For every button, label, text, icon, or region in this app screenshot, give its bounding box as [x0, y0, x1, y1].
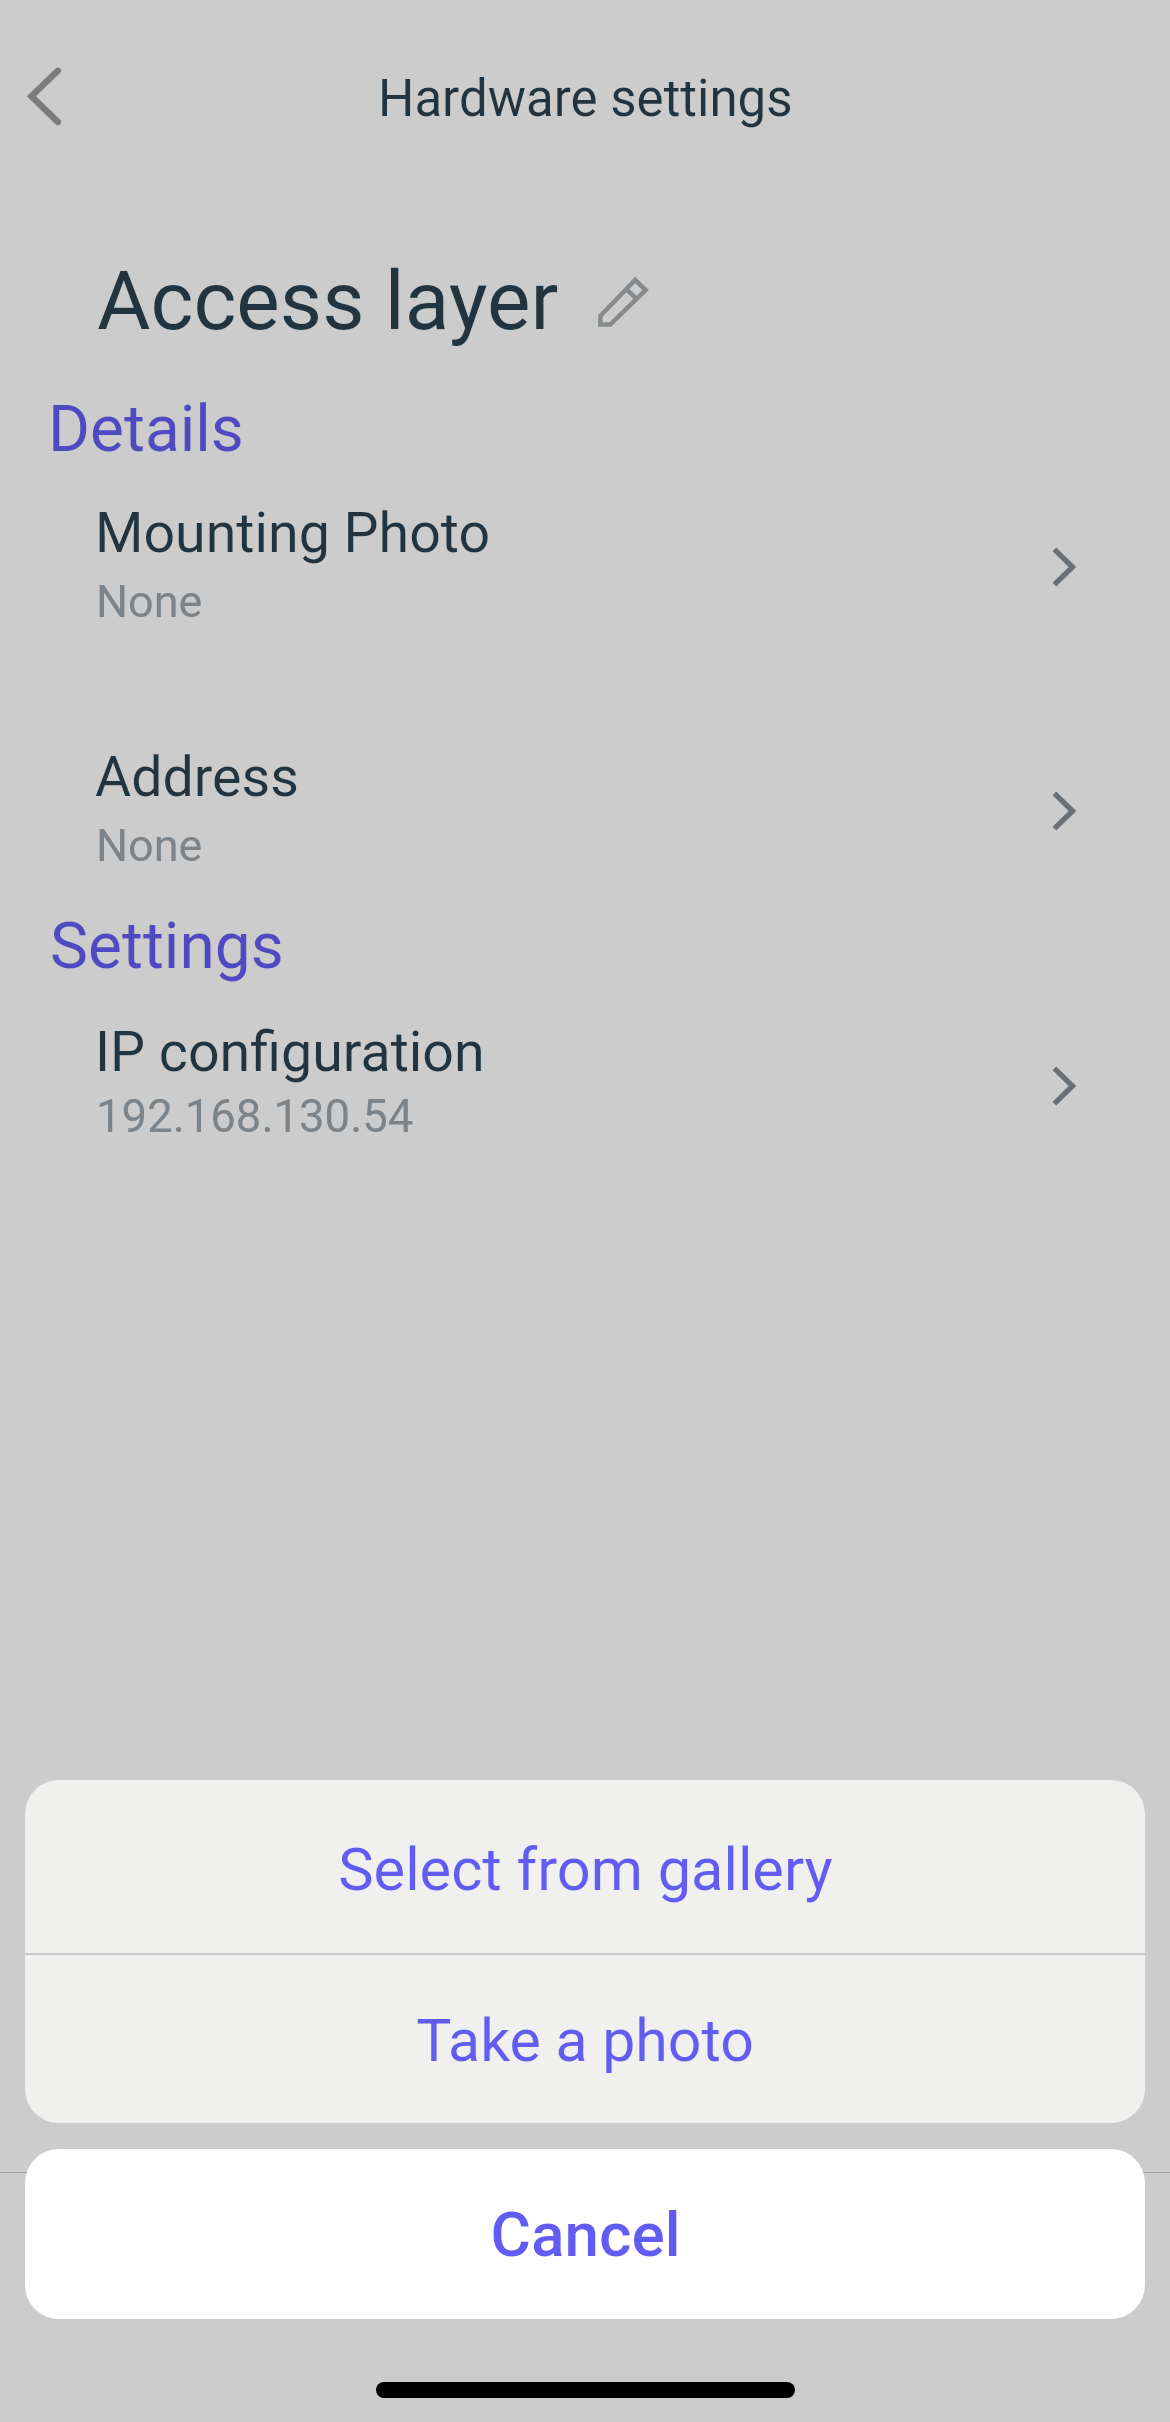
button[interactable]: Take a photo: [25, 1952, 1145, 2123]
staticText: None: [96, 575, 203, 628]
staticText: Details: [48, 392, 244, 467]
staticText: Mounting Photo: [95, 501, 491, 566]
button[interactable]: Cancel: [25, 2149, 1145, 2319]
button[interactable]: IP configuration: [0, 1017, 1170, 1149]
button[interactable]: Back: [6, 62, 74, 130]
button[interactable]: Mounting Photo: [0, 498, 1170, 630]
staticText: Cancel: [490, 2198, 681, 2271]
staticText: None: [96, 819, 203, 872]
staticText: Take a photo: [416, 2006, 754, 2075]
staticText: Hardware settings: [378, 69, 793, 129]
staticText: Address: [95, 745, 299, 810]
staticText: Settings: [50, 909, 284, 984]
staticText: Access layer: [97, 253, 559, 349]
staticText: Select from gallery: [338, 1835, 833, 1905]
staticText: IP configuration: [95, 1020, 485, 1085]
button[interactable]: Select from gallery: [25, 1780, 1145, 1952]
button[interactable]: Address: [0, 742, 1170, 874]
staticText: 192.168.130.54: [96, 1090, 414, 1143]
button[interactable]: Edit name: [588, 267, 658, 337]
